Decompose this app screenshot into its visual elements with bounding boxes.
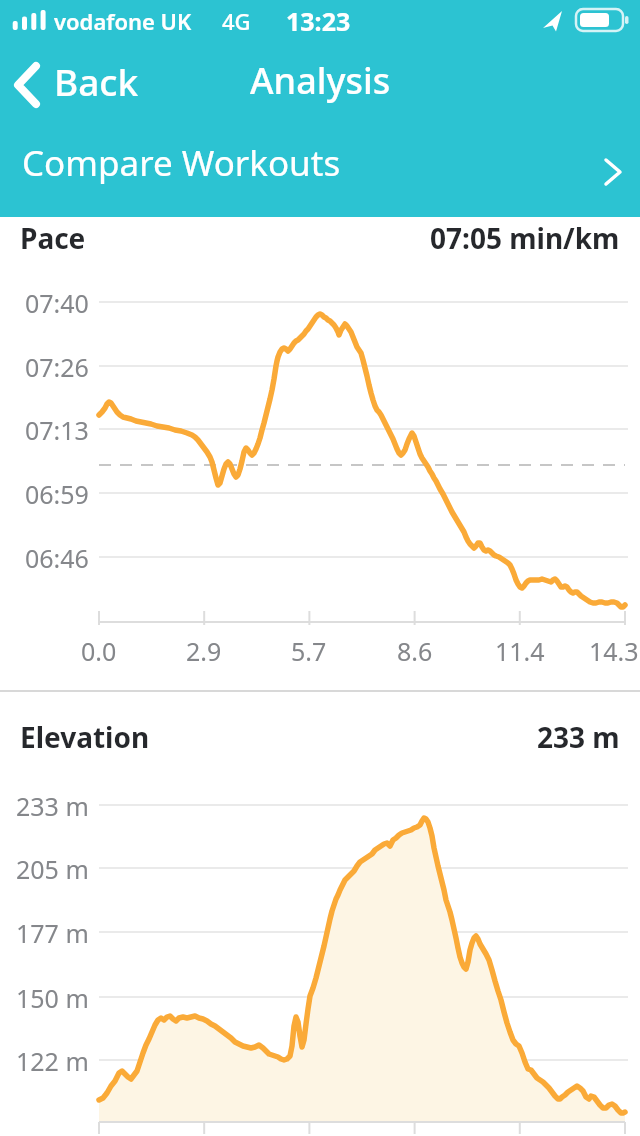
staticText: Analysis (250, 56, 391, 105)
staticText: Compare Workouts (22, 139, 341, 187)
staticText: 233 m (537, 718, 620, 756)
staticText: 233 m (16, 789, 89, 823)
staticText: 06:59 (25, 477, 89, 511)
staticText: 07:05 min/km (430, 219, 620, 257)
staticText: 07:40 (25, 286, 89, 320)
staticText: Elevation (20, 718, 150, 756)
staticText: 14.3 (589, 634, 639, 668)
staticText: Pace (20, 219, 86, 257)
button[interactable]: Compare Workouts (0, 120, 640, 217)
staticText: 150 m (16, 981, 89, 1015)
staticText: 4G (222, 6, 251, 36)
staticText: 11.4 (495, 634, 545, 668)
staticText: 13:23 (286, 4, 351, 38)
staticText: 177 m (16, 916, 89, 950)
staticText: 0.0 (81, 634, 117, 668)
staticText: 07:26 (25, 350, 89, 384)
staticText: 8.6 (397, 634, 433, 668)
staticText: 07:13 (25, 413, 89, 447)
staticText: 5.7 (291, 634, 327, 668)
button[interactable]: Back (6, 56, 156, 112)
staticText: 2.9 (186, 634, 222, 668)
staticText: 205 m (16, 852, 89, 886)
staticText: vodafone UK (54, 6, 192, 36)
staticText: Back (54, 56, 139, 106)
staticText: 122 m (16, 1044, 89, 1078)
staticText: 06:46 (25, 541, 89, 575)
